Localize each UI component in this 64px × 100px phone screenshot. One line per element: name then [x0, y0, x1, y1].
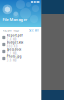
staticText: Budget.xlsx: [7, 41, 23, 44]
staticText: RECENT FILES: [2, 29, 18, 32]
staticText: File Manager: [2, 17, 27, 22]
button[interactable]: See All: [29, 29, 39, 32]
staticText: Specs.docx: [7, 48, 21, 51]
button[interactable]: Report.pdf: [0, 34, 41, 41]
staticText: Report.pdf: [7, 34, 23, 37]
staticText: 880 KB: [7, 45, 18, 48]
staticText: 1.1 MB: [7, 52, 17, 55]
staticText: 3.8 MB: [7, 59, 17, 62]
staticText: Photo.jpg: [7, 55, 22, 58]
button[interactable]: Budget.xlsx: [0, 41, 41, 48]
staticText: See All: [29, 29, 39, 32]
button[interactable]: Photo.jpg: [0, 55, 41, 62]
button[interactable]: Specs.docx: [0, 48, 41, 55]
staticText: 2.4 MB: [7, 38, 17, 41]
